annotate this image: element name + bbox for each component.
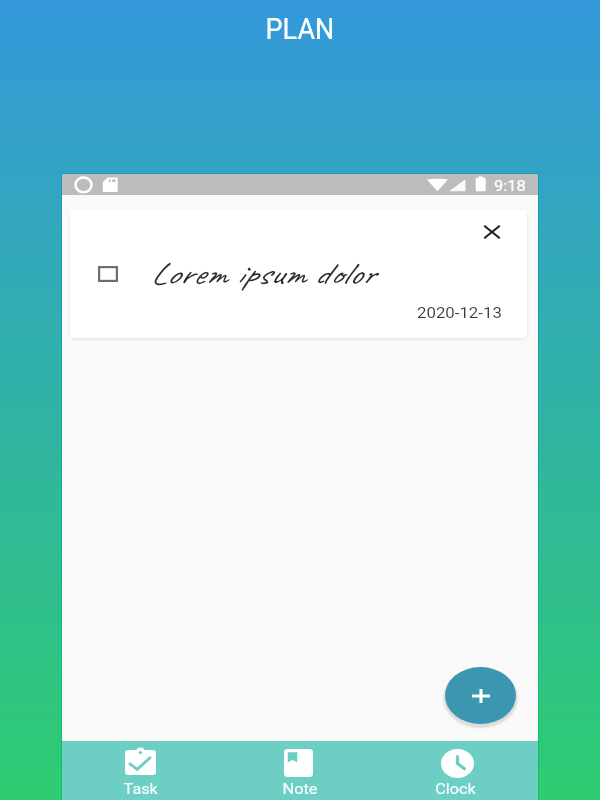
staticText: Note (283, 781, 317, 797)
button[interactable]: Clock (378, 741, 537, 800)
staticText: Clock (435, 781, 476, 797)
button[interactable]: Add (445, 667, 516, 724)
staticText: Lorem ipsum dolor (150, 254, 375, 293)
staticText: Task (124, 781, 158, 797)
staticText: 2020-12-13 (417, 304, 502, 322)
button[interactable]: Note (219, 741, 378, 800)
button[interactable]: Close (70, 210, 527, 338)
button[interactable]: Task (61, 741, 220, 800)
staticText: PLAN (266, 12, 334, 46)
button[interactable]: Toggle task (98, 266, 118, 282)
staticText: 9:18 (494, 178, 526, 194)
button[interactable]: Close (479, 219, 505, 245)
